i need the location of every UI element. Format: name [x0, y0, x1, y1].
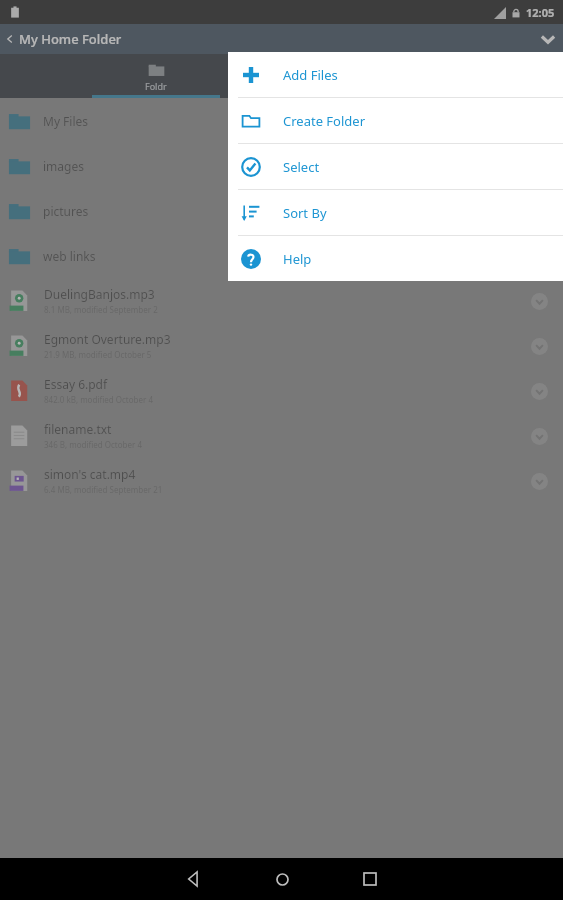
staticText: Sort By — [283, 204, 327, 222]
button[interactable]: Download Essay 6.pdf — [519, 371, 559, 411]
staticText: DuelingBanjos.mp3 — [44, 286, 155, 302]
staticText: 21.9 MB, modified October 5 — [44, 349, 152, 360]
staticText: pictures — [43, 203, 89, 219]
button[interactable]: More options — [533, 24, 563, 54]
staticText: My Files — [43, 113, 89, 129]
staticText: My Home Folder — [19, 30, 122, 48]
staticText: 346 B, modified October 4 — [44, 439, 142, 450]
button[interactable]: Egmont Overture.mp3 — [0, 323, 563, 368]
button[interactable]: Download filename.txt — [519, 416, 559, 456]
staticText: Foldr — [145, 80, 167, 92]
button[interactable]: Download simon's cat.mp4 — [519, 461, 559, 501]
staticText: Egmont Overture.mp3 — [44, 331, 171, 347]
button[interactable]: simon's cat.mp4 — [0, 458, 563, 503]
staticText: 8.1 MB, modified September 2 — [44, 304, 158, 315]
button[interactable]: DuelingBanjos.mp3 — [0, 278, 563, 323]
staticText: web links — [43, 248, 96, 264]
button[interactable]: Download Egmont Overture.mp3 — [519, 326, 559, 366]
button[interactable]: images — [0, 143, 563, 188]
button[interactable]: Essay 6.pdf — [0, 368, 563, 413]
staticText: Essay 6.pdf — [44, 376, 108, 392]
staticText: Help — [283, 250, 312, 268]
button[interactable]: web links — [0, 233, 563, 278]
button[interactable]: My Files — [0, 98, 563, 143]
button[interactable]: Home — [255, 858, 309, 900]
staticText: filename.txt — [44, 421, 112, 437]
button[interactable]: Download DuelingBanjos.mp3 — [519, 281, 559, 321]
button[interactable]: filename.txt — [0, 413, 563, 458]
button[interactable]: Select — [228, 144, 563, 189]
button[interactable]: Create Folder — [228, 98, 563, 143]
button[interactable]: Recent apps — [343, 858, 397, 900]
button[interactable]: Add Files — [228, 52, 563, 97]
button[interactable]: Back — [167, 858, 221, 900]
staticText: 6.4 MB, modified September 21 — [44, 484, 163, 495]
staticText: 12:05 — [526, 5, 555, 20]
staticText: Add Files — [283, 66, 338, 84]
staticText: 842.0 kB, modified October 4 — [44, 394, 153, 405]
staticText: images — [43, 158, 84, 174]
button[interactable]: Back — [0, 24, 128, 54]
button[interactable]: pictures — [0, 188, 563, 233]
staticText: Select — [283, 158, 320, 176]
button[interactable]: Help — [228, 236, 563, 281]
staticText: Create Folder — [283, 112, 366, 130]
button[interactable]: Foldr — [92, 54, 220, 98]
staticText: simon's cat.mp4 — [44, 466, 136, 482]
button[interactable]: Sort By — [228, 190, 563, 235]
